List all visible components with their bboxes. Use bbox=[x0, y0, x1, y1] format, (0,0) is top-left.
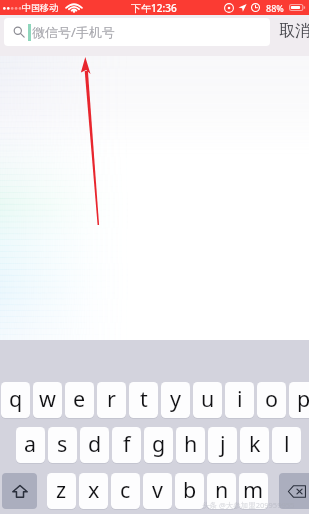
button[interactable]: p bbox=[289, 382, 309, 419]
button[interactable]: c bbox=[111, 473, 140, 510]
button[interactable]: Backspace bbox=[279, 473, 309, 509]
button[interactable]: l bbox=[272, 427, 301, 464]
staticText: f bbox=[123, 429, 131, 458]
staticText: u bbox=[201, 384, 215, 413]
button[interactable]: t bbox=[129, 382, 158, 419]
staticText: t bbox=[140, 384, 148, 413]
button[interactable]: e bbox=[65, 382, 94, 419]
staticText: r bbox=[107, 384, 116, 413]
staticText: h bbox=[184, 429, 198, 458]
staticText: j bbox=[220, 429, 226, 458]
staticText: 88% bbox=[266, 2, 284, 14]
button[interactable]: w bbox=[33, 382, 62, 419]
button[interactable]: 取消 bbox=[272, 15, 309, 47]
button[interactable]: k bbox=[240, 427, 269, 464]
staticText: q bbox=[9, 384, 23, 413]
button[interactable]: i bbox=[225, 382, 254, 419]
button[interactable]: g bbox=[144, 427, 173, 464]
staticText: 头条 @大参加盟209959955 bbox=[202, 500, 295, 510]
button[interactable]: d bbox=[80, 427, 109, 464]
staticText: e bbox=[73, 384, 86, 413]
staticText: b bbox=[183, 475, 197, 504]
staticText: o bbox=[265, 384, 279, 413]
button[interactable]: q bbox=[1, 382, 30, 419]
staticText: i bbox=[237, 384, 243, 413]
staticText: a bbox=[24, 429, 37, 458]
staticText: k bbox=[249, 429, 261, 458]
button[interactable]: y bbox=[161, 382, 190, 419]
staticText: s bbox=[57, 429, 68, 458]
button[interactable]: o bbox=[257, 382, 286, 419]
button[interactable]: u bbox=[193, 382, 222, 419]
button[interactable]: v bbox=[143, 473, 172, 510]
button[interactable]: Shift bbox=[2, 473, 37, 509]
button[interactable]: z bbox=[47, 473, 76, 510]
button[interactable]: s bbox=[48, 427, 77, 464]
staticText: z bbox=[56, 475, 67, 504]
staticText: c bbox=[120, 475, 131, 504]
button[interactable]: x bbox=[79, 473, 108, 510]
staticText: v bbox=[152, 475, 163, 504]
staticText: d bbox=[88, 429, 102, 458]
button[interactable]: h bbox=[176, 427, 205, 464]
staticText: g bbox=[152, 429, 166, 458]
staticText: p bbox=[297, 384, 309, 413]
staticText: l bbox=[284, 429, 290, 458]
button[interactable]: n bbox=[207, 473, 236, 510]
staticText: m bbox=[243, 475, 264, 504]
staticText: w bbox=[39, 384, 56, 413]
button[interactable]: a bbox=[16, 427, 45, 464]
staticText: 下午12:36 bbox=[131, 1, 177, 15]
button[interactable]: f bbox=[112, 427, 141, 464]
button[interactable]: r bbox=[97, 382, 126, 419]
staticText: x bbox=[88, 475, 100, 504]
staticText: 微信号/手机号 bbox=[32, 23, 115, 41]
button[interactable]: m bbox=[239, 473, 268, 510]
staticText: n bbox=[215, 475, 229, 504]
button[interactable]: j bbox=[208, 427, 237, 464]
staticText: 中国移动 bbox=[22, 2, 58, 13]
staticText: y bbox=[170, 384, 181, 413]
button[interactable]: b bbox=[175, 473, 204, 510]
button[interactable]: 微信号/手机号 bbox=[4, 18, 270, 46]
staticText: 取消 bbox=[279, 21, 309, 41]
